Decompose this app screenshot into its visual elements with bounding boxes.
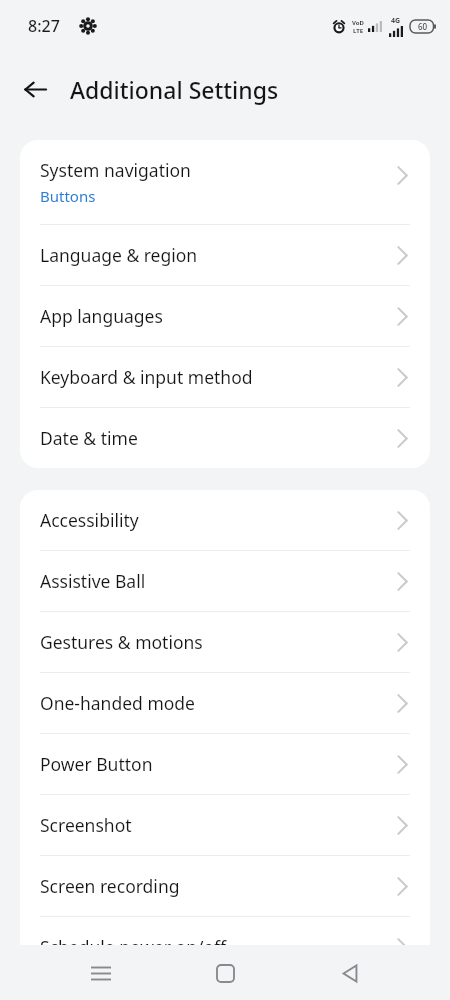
staticText: Date & time [40,426,138,450]
button[interactable]: Schedule power on/off [20,917,430,977]
staticText: Gestures & motions [40,630,203,654]
button[interactable]: Date & time [20,408,430,468]
button[interactable]: Power Button [20,734,430,794]
staticText: Additional Settings [70,74,279,105]
button[interactable]: Screenshot [20,795,430,855]
button[interactable]: Accessibility [20,490,430,550]
staticText: Screen recording [40,874,180,898]
staticText: App languages [40,304,163,328]
button[interactable]: Back [326,949,374,997]
staticText: Extra item [40,978,124,1000]
button[interactable]: Keyboard & input method [20,347,430,407]
button[interactable]: Recent apps [77,949,125,997]
staticText: Language & region [40,243,198,267]
staticText: System navigation [40,158,191,182]
button[interactable]: Assistive Ball [20,551,430,611]
staticText: VoD [352,19,364,27]
staticText: Schedule power on/off [40,935,227,959]
button[interactable]: Back [15,69,55,109]
button[interactable]: App languages [20,286,430,346]
staticText: LTE [353,27,364,35]
staticText: Screenshot [40,813,132,837]
button[interactable]: System navigation [20,140,430,224]
button[interactable]: Language & region [20,225,430,285]
staticText: One-handed mode [40,691,195,715]
staticText: 60 [418,21,428,32]
button[interactable]: Extra item [20,978,430,1000]
button[interactable]: Gestures & motions [20,612,430,672]
staticText: Accessibility [40,508,139,532]
staticText: Keyboard & input method [40,365,253,389]
staticText: Buttons [40,186,96,206]
staticText: 8:27 [28,15,60,37]
staticText: Power Button [40,752,153,776]
staticText: 4G [391,16,401,26]
button[interactable]: One-handed mode [20,673,430,733]
button[interactable]: Home [201,949,249,997]
staticText: Assistive Ball [40,569,146,593]
button[interactable]: Screen recording [20,856,430,916]
